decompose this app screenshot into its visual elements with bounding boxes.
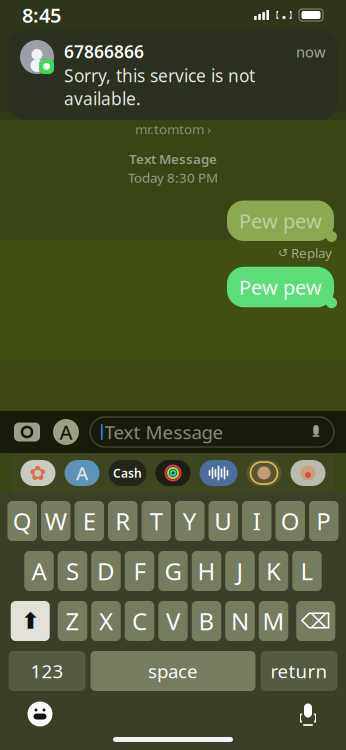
staticText: mr.tomtom [135, 120, 204, 138]
button[interactable]: App Store [64, 460, 99, 486]
button[interactable]: M [259, 601, 288, 641]
button[interactable]: Text Message [90, 417, 334, 447]
button[interactable]: C [125, 601, 154, 641]
button[interactable]: K [259, 551, 288, 591]
button[interactable]: Z [58, 601, 87, 641]
button[interactable]: L [292, 551, 322, 591]
button[interactable]: E [74, 501, 104, 541]
staticText: N [231, 605, 249, 637]
staticText: K [266, 555, 281, 587]
staticText: A [59, 419, 72, 445]
staticText: A [31, 555, 46, 587]
button[interactable]: Photos [20, 460, 55, 486]
staticText: D [97, 555, 115, 587]
staticText: G [164, 555, 181, 587]
button[interactable]: G [158, 551, 188, 591]
staticText: return [270, 659, 327, 683]
staticText: O [281, 505, 300, 537]
button[interactable]: Audio Message [199, 460, 237, 486]
button[interactable]: Apps [52, 418, 80, 446]
button[interactable]: O [275, 501, 305, 541]
staticText: Text Message [129, 150, 217, 168]
staticText: space [148, 659, 198, 683]
button[interactable]: D [91, 551, 121, 591]
staticText: 67866866 [64, 40, 144, 63]
staticText: T [150, 505, 163, 537]
staticText: ⬆ [21, 608, 40, 634]
staticText: C [132, 605, 147, 637]
button[interactable]: R [108, 501, 137, 541]
staticText: V [166, 605, 180, 637]
button[interactable]: U [208, 501, 238, 541]
button[interactable]: A [24, 551, 54, 591]
staticText: U [214, 505, 232, 537]
button[interactable]: mr.tomtom [135, 120, 211, 138]
staticText: Z [65, 605, 79, 637]
button[interactable]: Memoji Stickers [290, 460, 325, 486]
button[interactable]: J [225, 551, 255, 591]
button[interactable]: Apple Cash [108, 460, 146, 486]
staticText: Cash [113, 465, 142, 481]
button[interactable]: Dictation [296, 700, 320, 728]
button[interactable]: 123 [8, 651, 85, 691]
button[interactable]: S [58, 551, 87, 591]
staticText: B [198, 605, 214, 637]
staticText: I [253, 505, 261, 537]
staticText: ✿ [29, 462, 46, 484]
staticText: Pew pew [239, 274, 322, 300]
button[interactable]: V [158, 601, 188, 641]
staticText: Pew pew [239, 207, 322, 234]
staticText: F [133, 555, 145, 587]
button[interactable]: Emoji Keyboard [26, 700, 54, 728]
staticText: M [262, 605, 284, 637]
staticText: A [76, 461, 88, 485]
button[interactable]: X [91, 601, 121, 641]
staticText: H [197, 555, 215, 587]
button[interactable]: H [192, 551, 221, 591]
button[interactable]: return [260, 651, 337, 691]
button[interactable]: 67866866 [0, 30, 346, 120]
staticText: Q [13, 505, 32, 537]
staticText: Replay [291, 244, 332, 262]
button[interactable]: Q [7, 501, 37, 541]
staticText: S [66, 555, 79, 587]
button[interactable]: Delete [296, 601, 335, 641]
staticText: R [115, 505, 130, 537]
staticText: Today 8:30 PM [128, 169, 218, 186]
staticText: X [99, 605, 113, 637]
button[interactable]: P [309, 501, 338, 541]
button[interactable]: W [41, 501, 70, 541]
staticText: Y [183, 505, 197, 537]
button[interactable]: I [242, 501, 271, 541]
staticText: 123 [30, 659, 63, 683]
staticText: P [316, 505, 331, 537]
button[interactable]: Fitness [155, 460, 190, 486]
staticText: W [45, 505, 67, 537]
button[interactable]: N [225, 601, 255, 641]
staticText: 8:45 [22, 2, 61, 28]
button[interactable]: Y [175, 501, 204, 541]
button[interactable]: T [141, 501, 171, 541]
button[interactable]: Shift [11, 601, 50, 641]
staticText: › [207, 120, 211, 138]
button[interactable]: B [192, 601, 221, 641]
staticText: Text Message [105, 420, 224, 444]
button[interactable]: space [90, 651, 255, 691]
staticText: J [236, 555, 243, 587]
button[interactable]: Memoji [246, 460, 281, 486]
staticText: L [300, 555, 313, 587]
staticText: Sorry, this service is not available. [64, 64, 255, 110]
staticText: E [83, 505, 96, 537]
button[interactable]: F [125, 551, 154, 591]
staticText: now [296, 42, 326, 61]
staticText: ↺ [278, 246, 288, 260]
staticText: ⌫ [301, 609, 331, 633]
button[interactable]: Camera [12, 419, 42, 445]
